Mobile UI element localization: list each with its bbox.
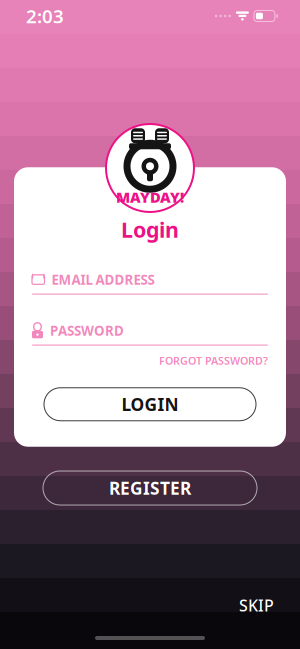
staticText: EMAIL ADDRESS	[51, 271, 154, 288]
staticText: FORGOT PASSWORD?	[159, 354, 268, 368]
staticText: Login	[121, 215, 179, 244]
staticText: MAYDAY!	[116, 187, 184, 207]
staticText: 2:03	[26, 4, 64, 28]
button[interactable]: LOGIN	[44, 388, 256, 421]
button[interactable]: FORGOT PASSWORD?	[159, 351, 268, 371]
button[interactable]: REGISTER	[43, 471, 257, 505]
staticText: PASSWORD	[50, 322, 124, 339]
staticText: REGISTER	[109, 476, 191, 499]
staticText: LOGIN	[121, 393, 178, 416]
staticText: SKIP	[239, 595, 274, 616]
button[interactable]: SKIP	[231, 589, 282, 622]
